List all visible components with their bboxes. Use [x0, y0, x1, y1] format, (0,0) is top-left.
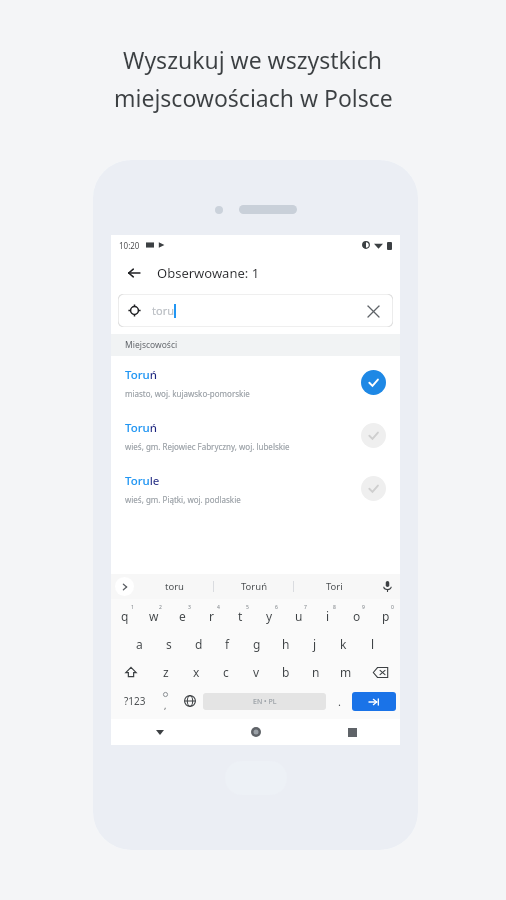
staticText: ?123: [124, 694, 146, 708]
staticText: r: [209, 608, 214, 624]
button[interactable]: i: [313, 602, 342, 630]
staticText: q: [121, 608, 129, 624]
staticText: s: [166, 636, 172, 652]
button[interactable]: Back: [121, 260, 147, 286]
button[interactable]: d: [184, 630, 213, 658]
button[interactable]: e: [168, 602, 197, 630]
button[interactable]: o: [342, 602, 371, 630]
button[interactable]: c: [211, 658, 241, 686]
button[interactable]: m: [331, 658, 361, 686]
button[interactable]: t: [226, 602, 255, 630]
button[interactable]: x: [181, 658, 211, 686]
staticText: wieś, gm. Piątki, woj. podlaskie: [125, 494, 241, 505]
staticText: 6: [275, 604, 278, 611]
button[interactable]: toru: [118, 294, 393, 327]
staticText: Toruń: [241, 580, 268, 593]
staticText: v: [253, 664, 260, 680]
staticText: Torule: [125, 473, 160, 489]
button[interactable]: EN • PL: [203, 693, 326, 710]
button[interactable]: Tori: [294, 574, 374, 599]
button[interactable]: Toggle follow: [361, 423, 386, 448]
staticText: 0: [391, 604, 394, 611]
staticText: 9: [362, 604, 365, 611]
button[interactable]: Toruń: [214, 574, 294, 599]
button[interactable]: Toruń: [111, 409, 400, 462]
staticText: l: [371, 636, 375, 652]
button[interactable]: Change language: [177, 686, 203, 716]
button[interactable]: Enter: [352, 692, 396, 711]
button[interactable]: g: [242, 630, 271, 658]
staticText: i: [326, 608, 330, 624]
staticText: .: [338, 694, 341, 709]
button[interactable]: Clear: [363, 301, 383, 321]
staticText: n: [312, 664, 320, 680]
staticText: 10:20: [119, 240, 140, 251]
staticText: t: [238, 608, 243, 624]
staticText: u: [295, 608, 303, 624]
staticText: wieś, gm. Rejowiec Fabryczny, woj. lubel…: [125, 441, 290, 452]
button[interactable]: ?123: [115, 686, 154, 716]
staticText: 2: [159, 604, 162, 611]
button[interactable]: Voice input: [374, 574, 400, 599]
staticText: 5: [246, 604, 249, 611]
staticText: e: [179, 608, 186, 624]
staticText: Miejscowości: [125, 339, 178, 351]
button[interactable]: Toggle follow: [361, 370, 386, 395]
button[interactable]: Toruń: [111, 356, 400, 409]
button[interactable]: z: [151, 658, 181, 686]
staticText: Toruń: [125, 367, 157, 383]
button[interactable]: v: [241, 658, 271, 686]
button[interactable]: s: [154, 630, 184, 658]
button[interactable]: n: [301, 658, 331, 686]
button[interactable]: l: [358, 630, 387, 658]
button[interactable]: Torule: [111, 462, 400, 515]
staticText: EN • PL: [253, 697, 277, 707]
button[interactable]: toru: [134, 574, 214, 599]
button[interactable]: Period: [326, 686, 352, 716]
button[interactable]: w: [139, 602, 168, 630]
button[interactable]: Backspace: [361, 658, 400, 686]
staticText: p: [382, 608, 390, 624]
staticText: 8: [333, 604, 336, 611]
button[interactable]: k: [329, 630, 358, 658]
staticText: 1: [131, 604, 134, 611]
staticText: f: [225, 636, 230, 652]
staticText: d: [195, 636, 203, 652]
button[interactable]: Toggle follow: [361, 476, 386, 501]
staticText: Obserwowane: 1: [157, 264, 260, 282]
staticText: m: [340, 664, 352, 680]
staticText: 7: [304, 604, 307, 611]
staticText: Wyszukuj we wszystkich: [123, 44, 383, 75]
button[interactable]: p: [371, 602, 400, 630]
button[interactable]: b: [271, 658, 301, 686]
staticText: z: [163, 664, 169, 680]
staticText: k: [340, 636, 347, 652]
staticText: 4: [217, 604, 220, 611]
staticText: b: [282, 664, 290, 680]
button[interactable]: r: [197, 602, 226, 630]
staticText: j: [313, 636, 317, 652]
staticText: c: [223, 664, 229, 680]
staticText: miasto, woj. kujawsko-pomorskie: [125, 388, 250, 399]
button[interactable]: a: [124, 630, 154, 658]
button[interactable]: Shift: [111, 658, 151, 686]
button[interactable]: u: [284, 602, 313, 630]
staticText: Toruń: [125, 420, 157, 436]
button[interactable]: q: [111, 602, 139, 630]
staticText: ,: [164, 699, 167, 711]
button[interactable]: Comma: [154, 686, 177, 716]
staticText: o: [353, 608, 361, 624]
button[interactable]: Home: [208, 719, 304, 745]
button[interactable]: Back: [111, 719, 208, 745]
button[interactable]: Recents: [304, 719, 400, 745]
staticText: Tori: [326, 580, 343, 593]
staticText: h: [282, 636, 290, 652]
button[interactable]: h: [271, 630, 300, 658]
button[interactable]: f: [213, 630, 242, 658]
button[interactable]: j: [300, 630, 329, 658]
button[interactable]: y: [255, 602, 284, 630]
staticText: a: [136, 636, 143, 652]
staticText: miejscowościach w Polsce: [114, 82, 393, 113]
staticText: 3: [188, 604, 191, 611]
button[interactable]: Expand suggestions: [115, 577, 134, 596]
